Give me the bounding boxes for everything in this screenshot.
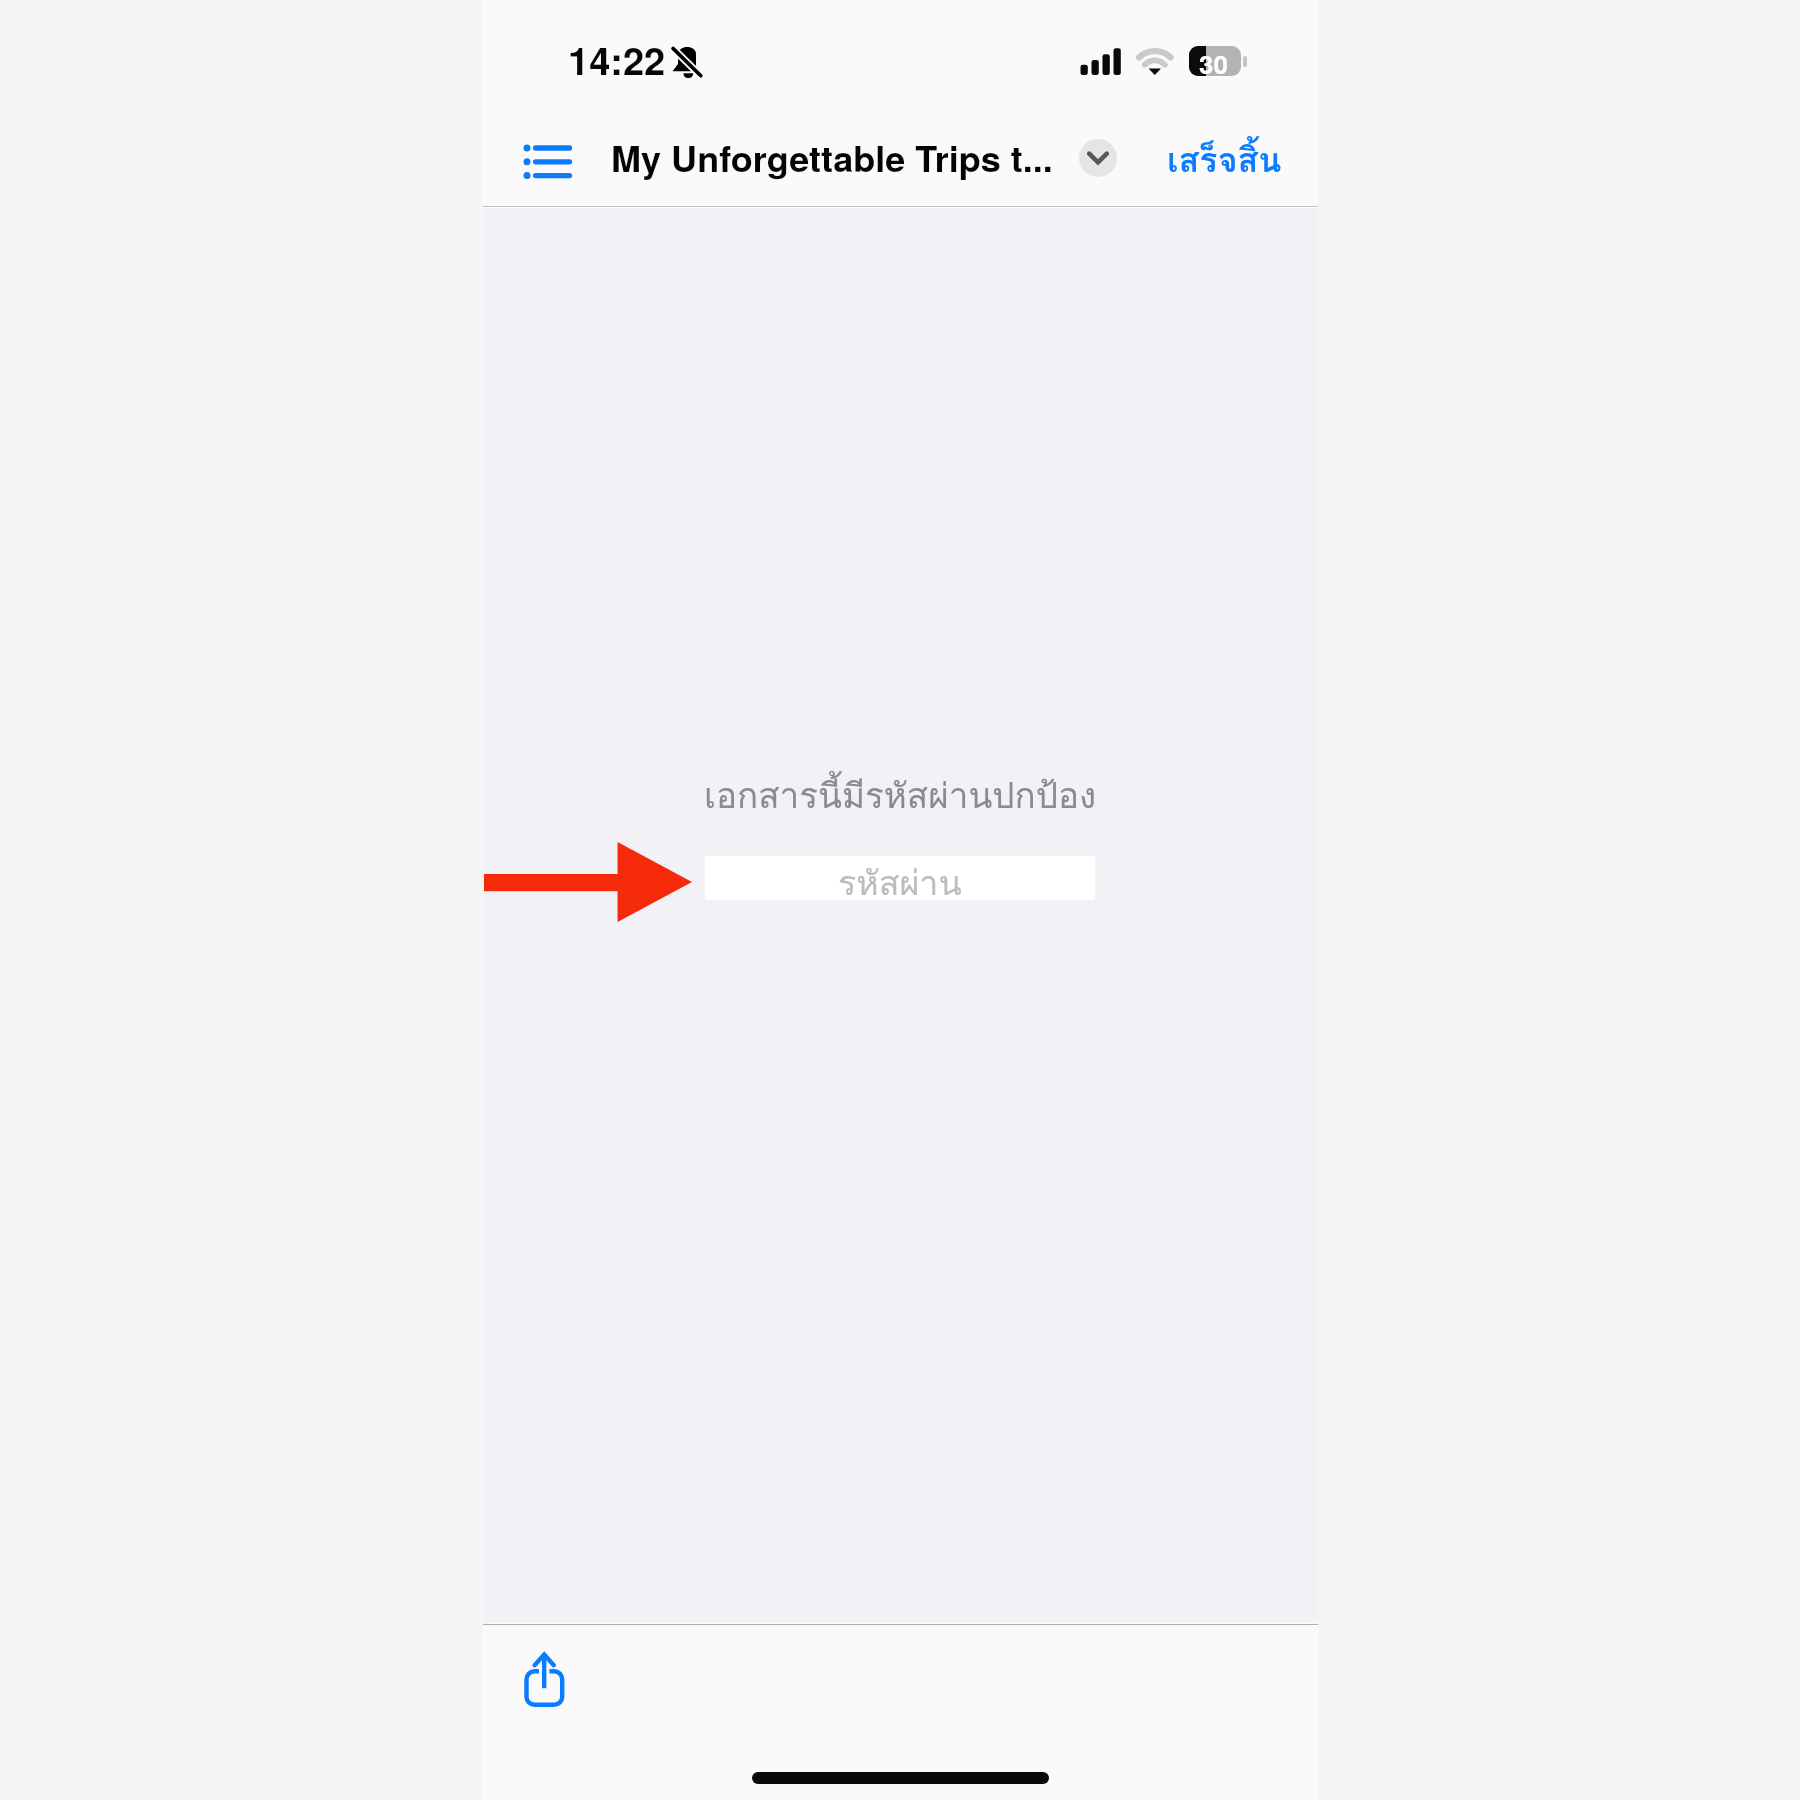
staticText: 14:22 bbox=[568, 32, 666, 86]
button[interactable]: รหัสผ่าน bbox=[705, 856, 1095, 900]
button[interactable]: Share bbox=[506, 1635, 584, 1717]
button[interactable]: เสร็จสิ้น bbox=[1159, 127, 1290, 193]
button[interactable]: Outline bbox=[505, 108, 593, 194]
staticText: เอกสารนี้มีรหัสผ่านปกป้อง bbox=[704, 768, 1097, 824]
staticText: 30 bbox=[1199, 46, 1228, 75]
staticText: รหัสผ่าน bbox=[838, 856, 962, 900]
staticText: เสร็จสิ้น bbox=[1167, 133, 1282, 187]
button[interactable]: Show more bbox=[1079, 139, 1117, 177]
staticText: My Unforgettable Trips t... bbox=[611, 131, 1053, 183]
